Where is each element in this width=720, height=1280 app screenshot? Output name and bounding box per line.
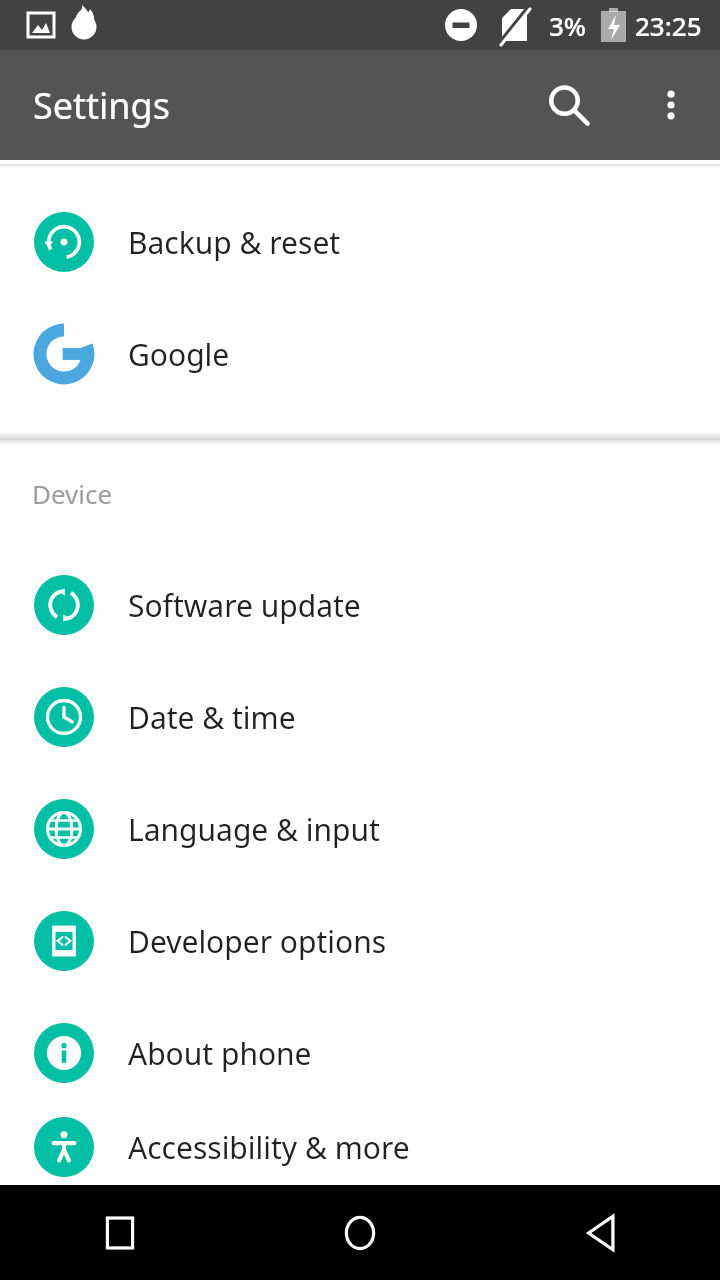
button[interactable]: Language & input xyxy=(0,773,720,885)
button[interactable]: Software update xyxy=(0,549,720,661)
staticText: 23:25 xyxy=(635,8,702,43)
button[interactable]: Search xyxy=(532,69,604,141)
button[interactable]: More options xyxy=(638,72,704,138)
button[interactable]: Backup & reset xyxy=(0,186,720,298)
staticText: Software update xyxy=(128,585,361,626)
staticText: Developer options xyxy=(128,921,387,962)
staticText: Device xyxy=(32,476,113,511)
button[interactable]: Date & time xyxy=(0,661,720,773)
button[interactable]: Recent apps xyxy=(0,1185,240,1280)
button[interactable]: Google xyxy=(0,298,720,410)
button[interactable]: Back xyxy=(480,1185,720,1280)
staticText: Settings xyxy=(33,81,170,130)
staticText: 3% xyxy=(549,8,587,43)
staticText: Backup & reset xyxy=(128,222,341,263)
button[interactable]: About phone xyxy=(0,997,720,1109)
staticText: Accessibility & more xyxy=(128,1127,410,1168)
button[interactable]: Accessibility & more xyxy=(0,1109,720,1185)
button[interactable]: Home xyxy=(240,1185,480,1280)
staticText: Google xyxy=(128,334,230,375)
staticText: Language & input xyxy=(128,809,380,850)
staticText: Date & time xyxy=(128,697,296,738)
staticText: About phone xyxy=(128,1033,312,1074)
button[interactable]: Developer options xyxy=(0,885,720,997)
